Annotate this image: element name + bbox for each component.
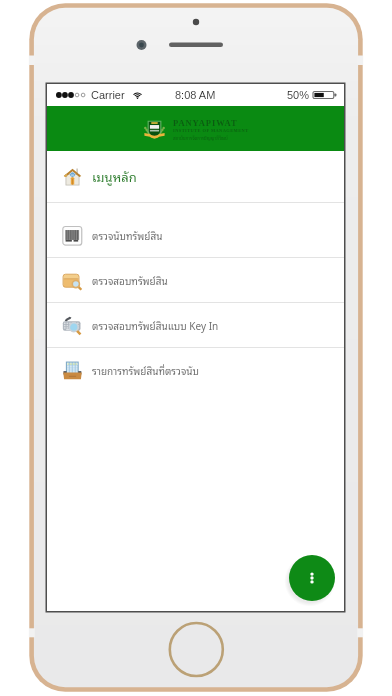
staticText: 50% [287,89,310,101]
staticText: รายการทรัพย์สินที่ตรวจนับ [92,362,199,378]
staticText: เมนูหลัก [92,166,137,187]
staticText: สถาบันการจัดการปัญญาภิวัฒน์ [173,134,228,141]
button[interactable]: ตรวจสอบทรัพย์สิน [47,258,344,302]
staticText: PANYAPIWAT [173,118,238,127]
button[interactable]: ตรวจสอบทรัพย์สินแบบ Key In [47,303,344,347]
staticText: INSTITUTE OF MANAGEMENT [173,128,249,133]
button[interactable]: เมนูหลัก [47,151,344,202]
staticText: ตรวจสอบทรัพย์สิน [92,272,168,288]
button[interactable]: รายการทรัพย์สินที่ตรวจนับ [47,348,344,392]
button[interactable]: ตรวจนับทรัพย์สิน [47,213,344,257]
staticText: ตรวจสอบทรัพย์สินแบบ Key In [92,317,219,333]
button[interactable]: More options [289,555,335,601]
staticText: ตรวจนับทรัพย์สิน [92,227,163,243]
staticText: Carrier [91,89,125,101]
staticText: 8:08 AM [175,89,216,101]
